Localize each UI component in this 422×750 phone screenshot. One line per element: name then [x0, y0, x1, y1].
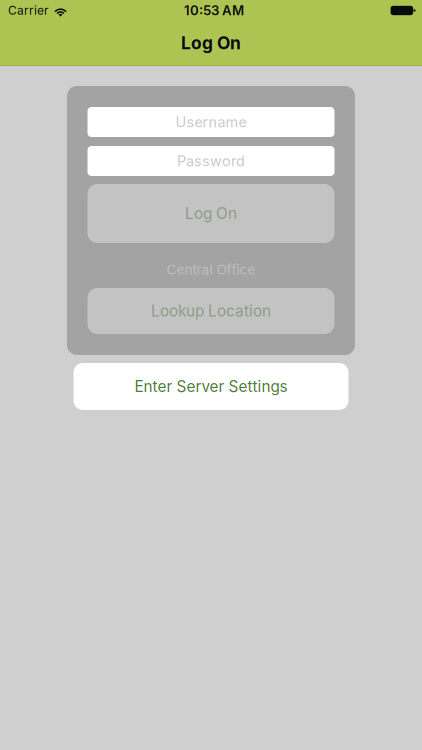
button[interactable]: Password [87, 146, 334, 176]
staticText: Username [175, 113, 246, 131]
staticText: Enter Server Settings [134, 377, 287, 396]
button[interactable]: Lookup Location [87, 288, 334, 334]
button[interactable]: Username [87, 107, 334, 137]
staticText: Log On [181, 32, 241, 53]
staticText: Carrier [8, 3, 49, 18]
staticText: Central Office [166, 261, 255, 278]
staticText: Password [177, 152, 245, 170]
staticText: 10:53 AM [184, 2, 244, 18]
button[interactable]: Enter Server Settings [73, 363, 348, 410]
staticText: Log On [185, 204, 237, 223]
button[interactable]: Log On [87, 184, 334, 243]
staticText: Lookup Location [151, 302, 271, 320]
